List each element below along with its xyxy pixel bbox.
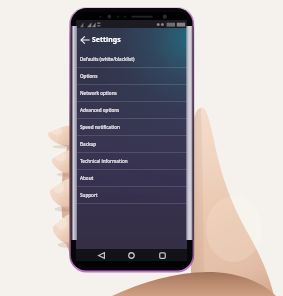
staticText: Defaults (white/blacklist) [80,56,135,62]
staticText: About [80,175,94,181]
button[interactable]: Advanced options [76,102,187,119]
button[interactable]: Technical information [76,153,187,170]
button[interactable]: Network options [76,85,187,102]
button[interactable]: About [76,170,187,187]
staticText: Speed notification [80,124,120,130]
staticText: Support [80,192,98,198]
button[interactable]: Back [78,33,91,46]
staticText: Backup [80,141,97,147]
staticText: Advanced options [80,107,120,113]
button[interactable]: Support [76,187,187,204]
staticText: Options [80,73,98,79]
button[interactable]: Recents [157,250,168,261]
button[interactable]: Options [76,68,187,85]
staticText: Network options [80,90,117,96]
button[interactable]: Backup [76,136,187,153]
button[interactable]: Speed notification [76,119,187,136]
button[interactable]: Home [126,250,137,261]
staticText: Settings [92,35,121,44]
button[interactable]: Back [96,250,107,261]
button[interactable]: Defaults (white/blacklist) [76,51,187,68]
staticText: Technical information [80,158,128,164]
